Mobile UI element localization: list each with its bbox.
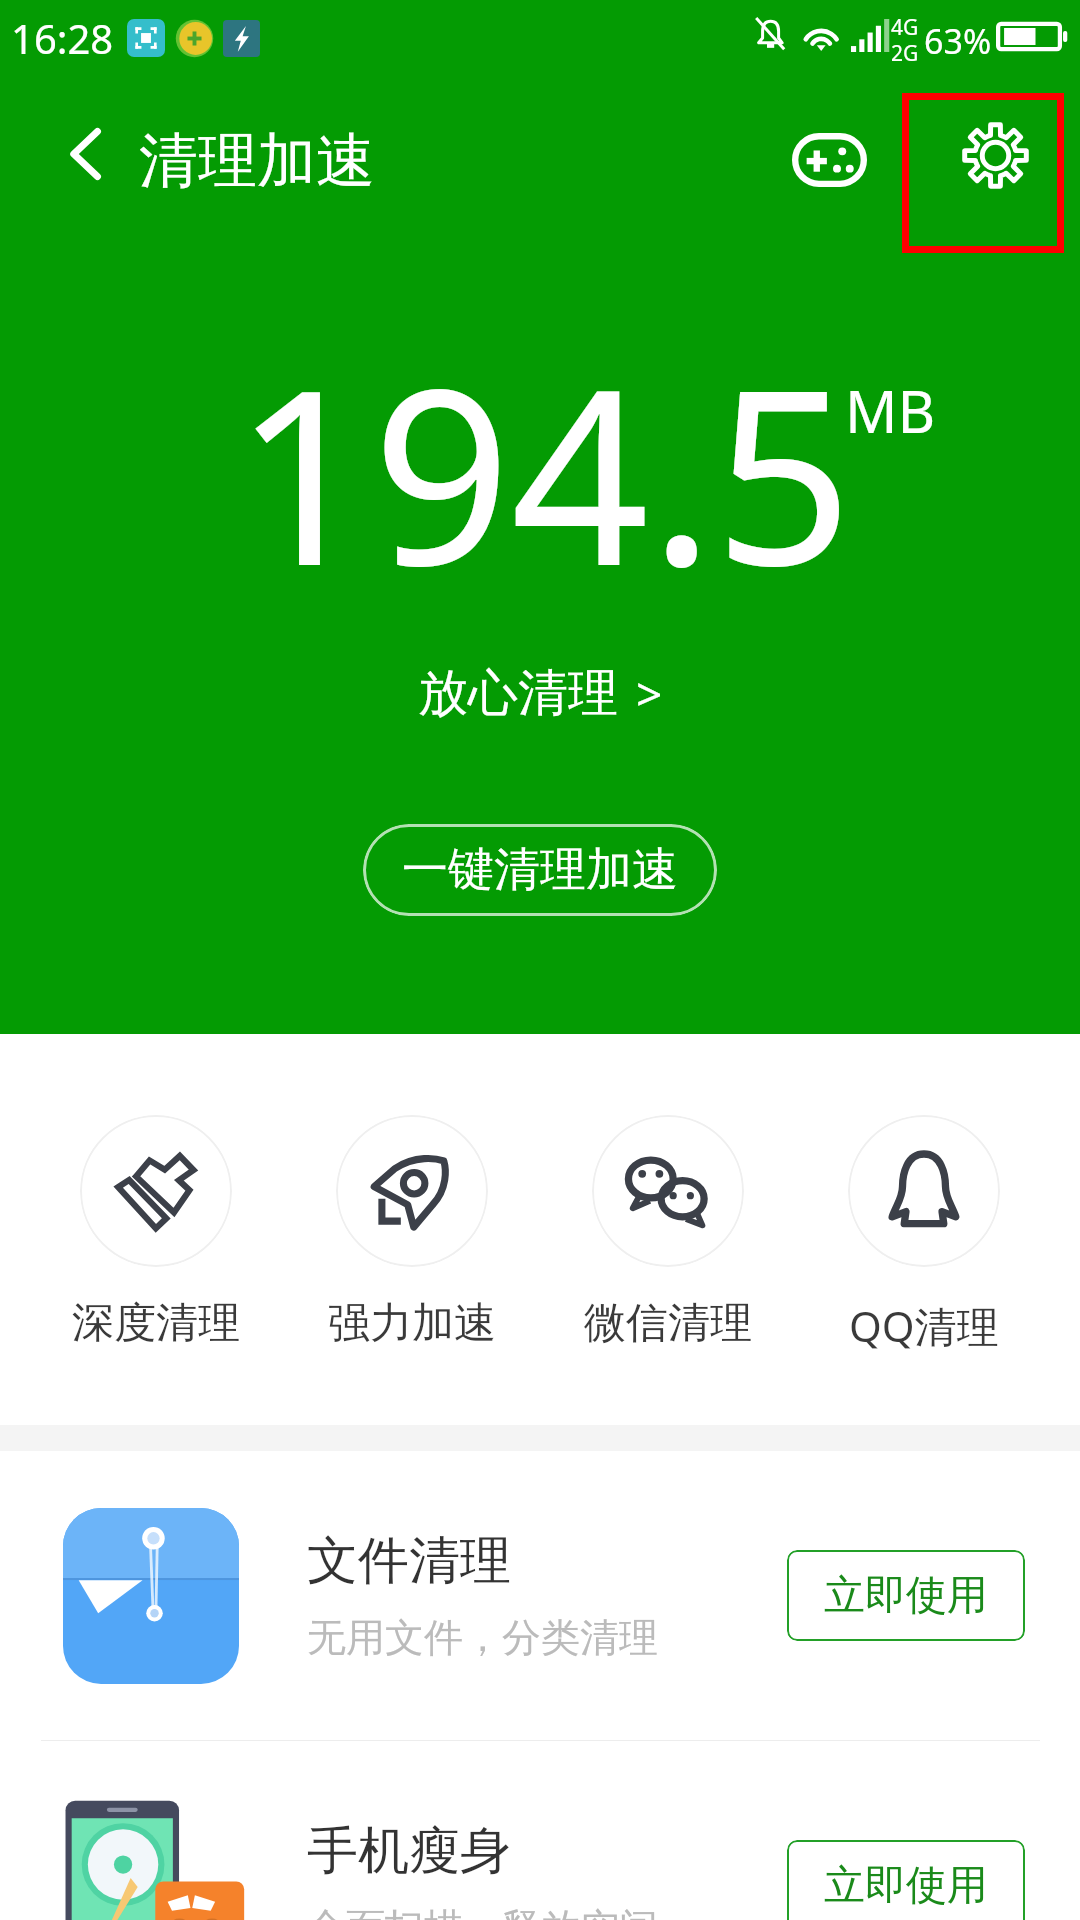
button[interactable]: 手机瘦身 xyxy=(0,1741,1080,1920)
staticText: QQ清理 xyxy=(849,1297,999,1354)
staticText: 立即使用 xyxy=(824,1570,988,1622)
staticText: 全面扫描，释放空间 xyxy=(307,1903,658,1920)
staticText: 清理加速 xyxy=(139,124,375,198)
button[interactable]: 立即使用 xyxy=(787,1840,1025,1920)
button[interactable]: 一键清理加速 xyxy=(363,824,717,916)
staticText: > xyxy=(636,662,663,725)
staticText: 微信清理 xyxy=(584,1297,752,1350)
button[interactable]: QQ清理 xyxy=(796,1034,1052,1425)
staticText: 深度清理 xyxy=(72,1297,240,1350)
staticText: 强力加速 xyxy=(328,1297,496,1350)
staticText: 放心清理 xyxy=(418,662,618,725)
staticText: MB xyxy=(845,371,936,450)
button[interactable]: 强力加速 xyxy=(284,1034,540,1425)
staticText: 194.5 xyxy=(234,306,853,636)
staticText: 手机瘦身 xyxy=(307,1819,511,1883)
button[interactable]: Settings xyxy=(902,93,1064,253)
staticText: 4G xyxy=(891,13,919,42)
button[interactable]: 微信清理 xyxy=(540,1034,796,1425)
staticText: 2G xyxy=(891,39,919,68)
staticText: 63% xyxy=(924,18,992,64)
button[interactable]: 放心清理 xyxy=(418,662,663,725)
button[interactable]: 立即使用 xyxy=(787,1550,1025,1641)
staticText: 16:28 xyxy=(11,11,114,65)
staticText: 无用文件，分类清理 xyxy=(307,1613,658,1662)
button[interactable]: 深度清理 xyxy=(28,1034,284,1425)
button[interactable]: Back xyxy=(44,114,124,194)
staticText: 文件清理 xyxy=(307,1529,511,1593)
staticText: 立即使用 xyxy=(824,1860,988,1912)
staticText: 一键清理加速 xyxy=(402,841,678,899)
button[interactable]: 文件清理 xyxy=(0,1451,1080,1740)
button[interactable]: Game center xyxy=(778,110,880,210)
